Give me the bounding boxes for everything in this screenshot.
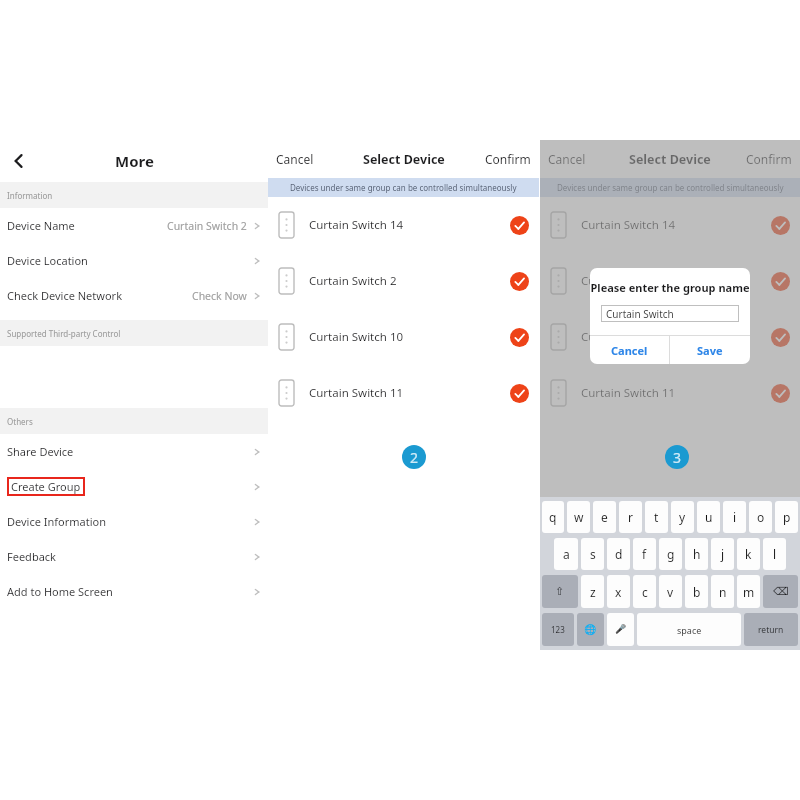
button[interactable]: v <box>659 575 682 608</box>
button[interactable]: Cancel <box>590 336 669 364</box>
button[interactable]: e <box>593 501 616 533</box>
button[interactable]: d <box>607 538 630 570</box>
button[interactable]: Selected <box>510 328 529 347</box>
staticText: g <box>667 546 675 562</box>
staticText: Select Device <box>363 151 445 168</box>
button[interactable]: Device Name <box>0 208 268 243</box>
staticText: v <box>667 584 674 600</box>
button[interactable]: Back <box>4 146 34 176</box>
button[interactable]: h <box>685 538 708 570</box>
button[interactable]: x <box>607 575 630 608</box>
button[interactable]: Confirm <box>485 151 531 167</box>
staticText: t <box>654 509 659 525</box>
staticText: space <box>677 624 702 636</box>
staticText: Curtain Switch 2 <box>581 273 669 289</box>
button[interactable]: Selected <box>510 384 529 403</box>
staticText: Curtain Switch 14 <box>309 217 404 233</box>
staticText: q <box>549 509 557 525</box>
staticText: Curtain Switch 14 <box>581 217 676 233</box>
button[interactable]: space <box>637 613 741 646</box>
button[interactable]: Device Information <box>0 504 268 539</box>
staticText: Save <box>697 343 723 358</box>
staticText: c <box>642 584 648 600</box>
staticText: h <box>693 546 701 562</box>
button[interactable]: Cancel <box>276 151 314 167</box>
staticText: Curtain Switch 2 <box>167 219 247 233</box>
staticText: 2 <box>410 448 419 467</box>
button[interactable]: c <box>633 575 656 608</box>
button[interactable]: t <box>645 501 668 533</box>
button[interactable]: Curtain Switch 2 <box>540 253 800 309</box>
button[interactable]: w <box>567 501 590 533</box>
button[interactable]: y <box>671 501 694 533</box>
button[interactable]: u <box>697 501 720 533</box>
button[interactable]: Check Device Network <box>0 278 268 313</box>
button[interactable]: Return <box>744 613 798 646</box>
button[interactable]: g <box>659 538 682 570</box>
button[interactable]: Shift <box>542 575 578 608</box>
button[interactable]: i <box>723 501 746 533</box>
staticText: j <box>721 546 725 562</box>
staticText: b <box>693 584 701 600</box>
button[interactable]: Selected <box>771 216 790 235</box>
button[interactable]: 🎤 <box>607 613 634 646</box>
staticText: 🌐 <box>584 624 597 636</box>
button[interactable]: Curtain Switch 10 <box>540 309 800 365</box>
staticText: Devices under same group can be controll… <box>557 182 784 193</box>
button[interactable]: l <box>763 538 786 570</box>
button[interactable]: Curtain Switch 14 <box>540 197 800 253</box>
button[interactable]: Share Device <box>0 434 268 469</box>
staticText: Curtain Switch 11 <box>581 385 676 401</box>
button[interactable]: f <box>633 538 656 570</box>
button[interactable]: Create Group <box>0 469 268 504</box>
staticText: p <box>783 509 791 525</box>
button[interactable]: Add to Home Screen <box>0 574 268 609</box>
button[interactable]: Device Location <box>0 243 268 278</box>
button[interactable]: Selected <box>771 272 790 291</box>
button[interactable]: Backspace <box>763 575 798 608</box>
button[interactable]: Feedback <box>0 539 268 574</box>
staticText: return <box>758 624 784 636</box>
button[interactable]: s <box>581 538 604 570</box>
button[interactable]: p <box>775 501 798 533</box>
button[interactable]: Numbers <box>542 613 574 646</box>
button[interactable]: r <box>619 501 642 533</box>
button[interactable]: Curtain Switch 14 <box>268 197 539 253</box>
staticText: Feedback <box>7 549 56 564</box>
staticText: d <box>615 546 623 562</box>
button[interactable]: Language <box>577 613 604 646</box>
button[interactable]: a <box>554 538 578 570</box>
button[interactable]: Cancel <box>548 151 586 167</box>
button[interactable]: Curtain Switch 2 <box>268 253 539 309</box>
button[interactable]: j <box>711 538 734 570</box>
button[interactable]: Selected <box>510 272 529 291</box>
button[interactable]: k <box>737 538 760 570</box>
button[interactable]: n <box>711 575 734 608</box>
staticText: a <box>563 546 570 562</box>
staticText: l <box>773 546 777 562</box>
staticText: s <box>590 546 596 562</box>
button[interactable]: Curtain Switch 11 <box>268 365 539 421</box>
button[interactable]: Curtain Switch 10 <box>268 309 539 365</box>
button[interactable]: b <box>685 575 708 608</box>
staticText: Curtain Switch 11 <box>309 385 404 401</box>
button[interactable]: z <box>581 575 604 608</box>
button[interactable]: o <box>749 501 772 533</box>
staticText: Others <box>7 416 33 427</box>
button[interactable]: q <box>542 501 564 533</box>
staticText: Check Device Network <box>7 288 123 303</box>
button[interactable]: Curtain Switch 11 <box>540 365 800 421</box>
button[interactable]: m <box>737 575 760 608</box>
staticText: Create Group <box>11 479 81 494</box>
staticText: Information <box>7 190 53 201</box>
button[interactable]: Selected <box>510 216 529 235</box>
button[interactable]: Confirm <box>746 151 792 167</box>
staticText: y <box>679 509 686 525</box>
staticText: Please enter the group name <box>590 280 750 295</box>
staticText: Curtain Switch <box>606 307 674 321</box>
button[interactable]: Selected <box>771 328 790 347</box>
staticText: i <box>733 509 737 525</box>
button[interactable]: Save <box>670 336 750 364</box>
button[interactable]: Selected <box>771 384 790 403</box>
staticText: n <box>719 584 727 600</box>
